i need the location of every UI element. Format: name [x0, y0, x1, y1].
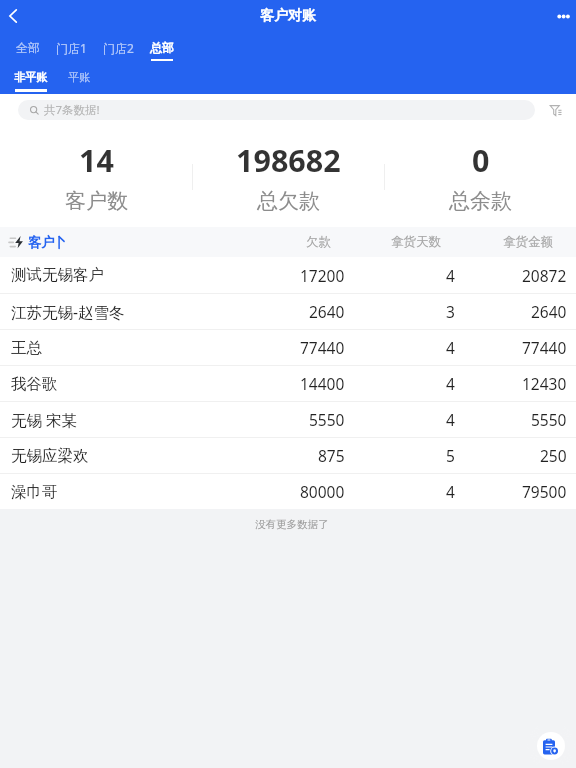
staticText: 王总 — [11, 338, 235, 358]
staticText: 客户数 — [65, 188, 128, 214]
staticText: 77440 — [522, 337, 567, 358]
staticText: 4 — [446, 373, 455, 394]
button[interactable]: 王总 — [0, 330, 576, 365]
staticText: 4 — [446, 337, 455, 358]
button[interactable]: 无锡 宋某 — [0, 402, 576, 437]
staticText: 测试无锡客户 — [11, 265, 235, 285]
staticText: 非平账 — [14, 70, 47, 84]
button[interactable]: 测试无锡客户 — [0, 257, 576, 293]
button[interactable]: Back — [0, 0, 30, 32]
button[interactable]: 门店2 — [95, 32, 142, 62]
staticText: 14400 — [300, 373, 345, 394]
staticText: 总欠款 — [257, 188, 320, 214]
staticText: 4 — [446, 481, 455, 502]
button[interactable]: 澡巾哥 — [0, 474, 576, 509]
staticText: 无锡 宋某 — [11, 409, 235, 430]
staticText: 2640 — [531, 301, 567, 322]
staticText: 198682 — [236, 139, 341, 181]
staticText: 5550 — [531, 409, 567, 430]
button[interactable]: New reconciliation record — [537, 732, 565, 760]
staticText: 875 — [318, 445, 345, 466]
staticText: 没有更多数据了 — [255, 518, 329, 531]
staticText: 3 — [446, 301, 455, 322]
button[interactable]: Filter — [543, 97, 569, 123]
button[interactable]: 共7条数据! — [18, 100, 535, 120]
staticText: 14 — [79, 139, 114, 181]
staticText: 拿货金额 — [503, 234, 553, 250]
staticText: 77440 — [300, 337, 345, 358]
button[interactable]: 平账 — [55, 64, 103, 92]
staticText: 平账 — [68, 70, 90, 84]
staticText: 80000 — [300, 481, 345, 502]
staticText: 我谷歌 — [11, 374, 235, 394]
staticText: 4 — [446, 265, 455, 286]
staticText: 5 — [446, 445, 455, 466]
button[interactable]: More options — [546, 0, 576, 32]
staticText: 20872 — [522, 265, 567, 286]
button[interactable]: 江苏无锡-赵雪冬 — [0, 294, 576, 329]
staticText: 客户 — [28, 234, 55, 251]
staticText: 澡巾哥 — [11, 482, 235, 502]
staticText: 12430 — [522, 373, 567, 394]
staticText: 17200 — [300, 265, 345, 286]
staticText: 250 — [540, 445, 567, 466]
staticText: 2640 — [309, 301, 345, 322]
button[interactable]: 全部 — [8, 32, 48, 61]
button[interactable]: 总部 — [142, 32, 182, 61]
staticText: 5550 — [309, 409, 345, 430]
staticText: 总部 — [150, 40, 174, 55]
staticText: 总余款 — [449, 188, 512, 214]
staticText: 欠款 — [306, 234, 331, 250]
button[interactable]: 客户 — [9, 234, 221, 251]
staticText: 0 — [472, 139, 490, 181]
staticText: 全部 — [16, 40, 40, 55]
button[interactable]: 无锡应梁欢 — [0, 438, 576, 473]
staticText: 江苏无锡-赵雪冬 — [11, 301, 235, 322]
button[interactable]: 非平账 — [6, 64, 55, 92]
staticText: 4 — [446, 409, 455, 430]
staticText: 门店2 — [103, 40, 134, 56]
staticText: 无锡应梁欢 — [11, 446, 235, 466]
staticText: 客户对账 — [260, 7, 316, 25]
staticText: 79500 — [522, 481, 567, 502]
staticText: 共7条数据! — [44, 102, 100, 118]
button[interactable]: 我谷歌 — [0, 366, 576, 401]
staticText: 拿货天数 — [391, 234, 441, 250]
button[interactable]: 门店1 — [48, 32, 95, 62]
staticText: 门店1 — [56, 40, 87, 56]
